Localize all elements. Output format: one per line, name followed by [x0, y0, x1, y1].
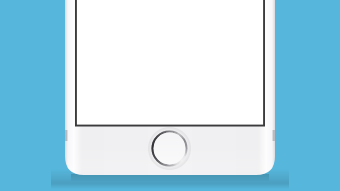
button[interactable]: Home button: [152, 131, 188, 167]
